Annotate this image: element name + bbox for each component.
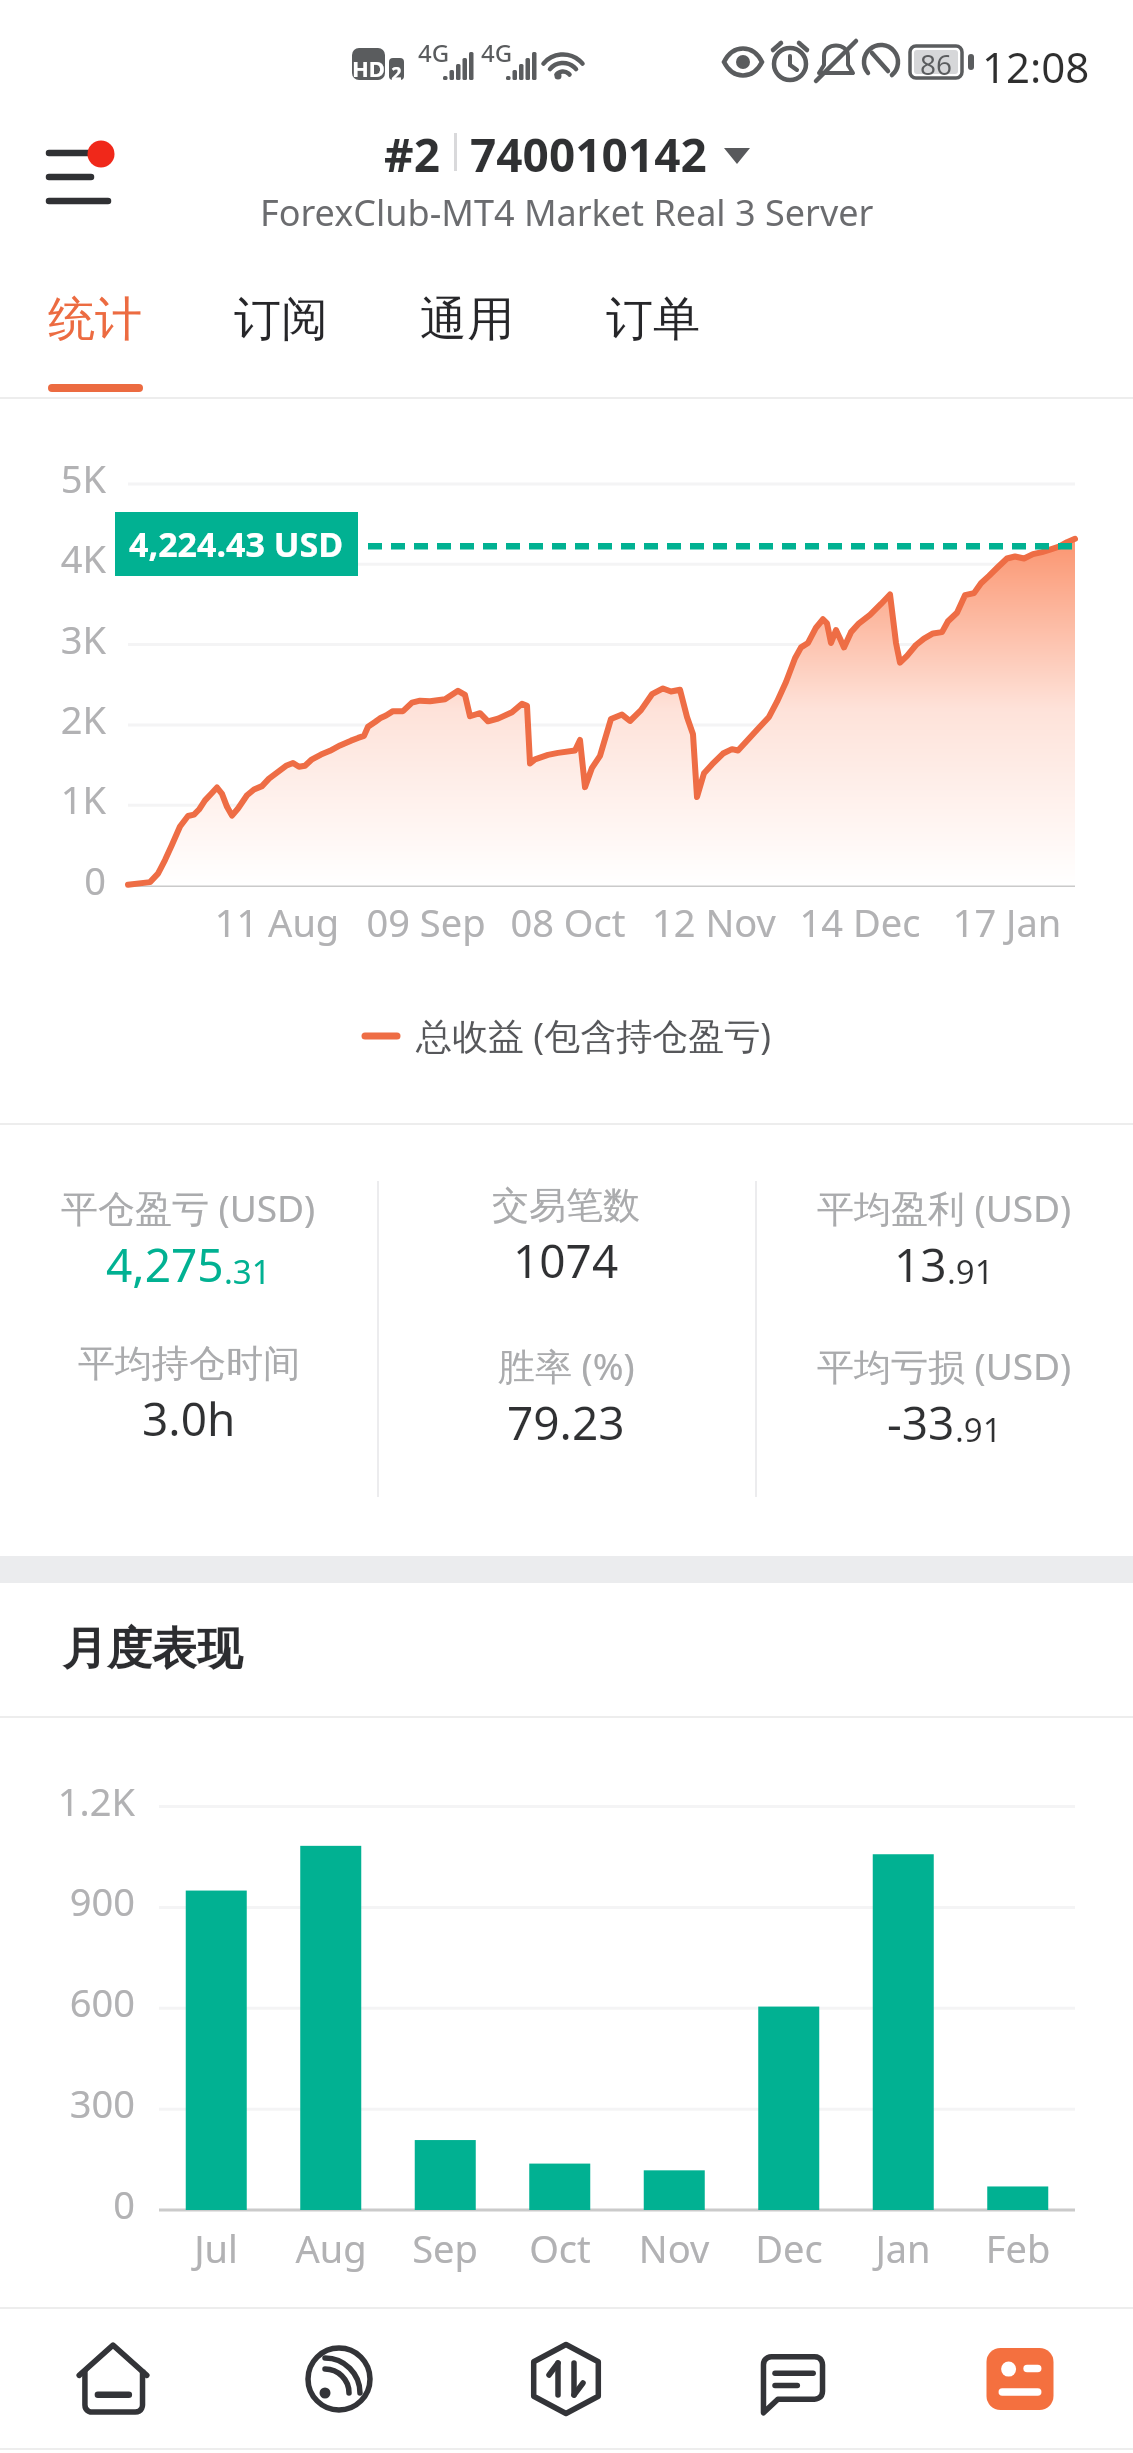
staticText: 17 Jan — [917, 896, 1097, 948]
staticText: 月度表现 — [62, 1621, 242, 1678]
button[interactable]: 平均盈利 (USD) — [755, 1182, 1133, 1312]
staticText: 86 — [914, 45, 958, 83]
staticText: #2 — [384, 123, 441, 181]
staticText: 300 — [11, 2077, 135, 2129]
staticText: 740010142 — [470, 123, 707, 181]
staticText: 平仓盈亏 (USD) — [61, 1182, 316, 1233]
staticText: .91 — [947, 1249, 994, 1294]
staticText: 12:08 — [982, 38, 1090, 95]
button[interactable]: Profile — [906, 2309, 1133, 2448]
button[interactable]: Trade — [452, 2309, 679, 2448]
staticText: 2 — [369, 61, 424, 86]
button[interactable]: Home — [0, 2309, 226, 2448]
staticText: -33 — [887, 1391, 955, 1454]
staticText: Dec — [709, 2222, 869, 2274]
button[interactable]: 平均持仓时间 — [0, 1340, 377, 1470]
staticText: ForexClub-MT4 Market Real 3 Server — [260, 188, 874, 237]
button[interactable]: 平仓盈亏 (USD) — [0, 1182, 377, 1312]
staticText: 4,275 — [106, 1233, 224, 1296]
staticText: 4G — [418, 36, 450, 69]
staticText: Jan — [823, 2222, 983, 2274]
staticText: 平均持仓时间 — [78, 1340, 300, 1387]
staticText: Oct — [480, 2222, 640, 2274]
staticText: 0 — [11, 2178, 135, 2230]
button[interactable]: 交易笔数 — [377, 1182, 755, 1312]
staticText: 09 Sep — [336, 896, 516, 948]
staticText: 13 — [894, 1233, 947, 1296]
staticText: 订阅 — [234, 290, 328, 349]
staticText: 08 Oct — [478, 896, 658, 948]
staticText: 平均亏损 (USD) — [817, 1340, 1072, 1391]
staticText: .91 — [955, 1407, 1002, 1452]
button[interactable]: 统计 — [22, 272, 170, 397]
staticText: 79.23 — [507, 1391, 625, 1454]
button[interactable]: Messages — [679, 2309, 906, 2448]
staticText: .31 — [224, 1249, 271, 1294]
staticText: 1K — [21, 773, 106, 825]
staticText: 订单 — [606, 290, 700, 349]
staticText: Sep — [365, 2222, 525, 2274]
button[interactable]: 通用 — [394, 272, 542, 397]
staticText: 5K — [21, 452, 106, 504]
staticText: Feb — [938, 2222, 1098, 2274]
button[interactable]: Menu — [36, 128, 126, 204]
staticText: Nov — [594, 2222, 754, 2274]
staticText: 总收益 (包含持仓盈亏) — [416, 1011, 771, 1060]
staticText: 600 — [11, 1976, 135, 2028]
staticText: Aug — [251, 2222, 411, 2274]
staticText: 平均盈利 (USD) — [817, 1182, 1072, 1233]
staticText: 4,224.43 USD — [129, 521, 344, 567]
staticText: 11 Aug — [187, 896, 367, 948]
staticText: 3.0h — [142, 1387, 236, 1450]
button[interactable]: Signals — [226, 2309, 452, 2448]
button[interactable]: 平均亏损 (USD) — [755, 1340, 1133, 1470]
button[interactable]: 月度表现 — [0, 1583, 1133, 1716]
staticText: 12 Nov — [624, 896, 804, 948]
staticText: 2K — [21, 693, 106, 745]
button[interactable]: 订单 — [580, 272, 728, 397]
button[interactable]: #2 — [360, 123, 773, 181]
staticText: 4K — [21, 532, 106, 584]
staticText: HD — [328, 53, 409, 83]
staticText: 胜率 (%) — [498, 1340, 635, 1391]
staticText: 1074 — [513, 1229, 619, 1292]
staticText: 1.2K — [11, 1775, 135, 1827]
staticText: 统计 — [48, 290, 142, 349]
staticText: 3K — [21, 613, 106, 665]
staticText: 交易笔数 — [492, 1182, 640, 1229]
button[interactable]: 胜率 (%) — [377, 1340, 755, 1470]
staticText: 900 — [11, 1875, 135, 1927]
button[interactable]: 订阅 — [208, 272, 356, 397]
staticText: 通用 — [420, 290, 514, 349]
staticText: 0 — [21, 854, 106, 906]
staticText: 14 Dec — [770, 896, 950, 948]
staticText: Jul — [136, 2222, 296, 2274]
staticText: 4G — [481, 36, 513, 69]
